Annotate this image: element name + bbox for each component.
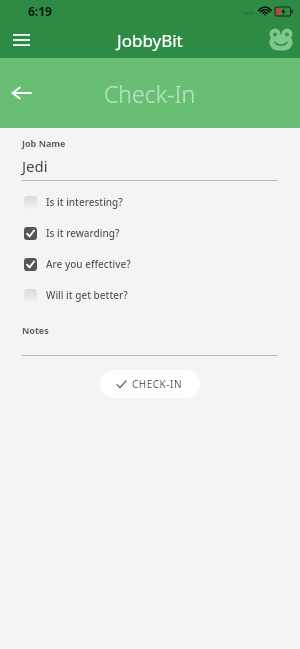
button[interactable]: CHECK-IN xyxy=(100,370,200,398)
staticText: Job Name xyxy=(22,137,66,149)
button[interactable]: Is it rewarding? xyxy=(22,226,278,240)
staticText: Are you effective? xyxy=(46,257,131,271)
button[interactable]: Back xyxy=(3,75,39,111)
button[interactable]: Will it get better? xyxy=(22,288,278,302)
staticText: Will it get better? xyxy=(46,288,128,302)
button[interactable]: Menu xyxy=(5,24,37,56)
button[interactable]: Profile xyxy=(266,25,296,55)
staticText: Jedi xyxy=(22,156,48,176)
staticText: CHECK-IN xyxy=(132,377,183,391)
staticText: Notes xyxy=(22,324,49,336)
staticText: 6:19 xyxy=(28,3,52,19)
staticText: Check-In xyxy=(104,78,196,109)
staticText: JobbyBit xyxy=(117,29,183,52)
staticText: Is it rewarding? xyxy=(46,226,120,240)
button[interactable]: Is it interesting? xyxy=(22,195,278,209)
button[interactable]: Are you effective? xyxy=(22,257,278,271)
staticText: Is it interesting? xyxy=(46,195,123,209)
